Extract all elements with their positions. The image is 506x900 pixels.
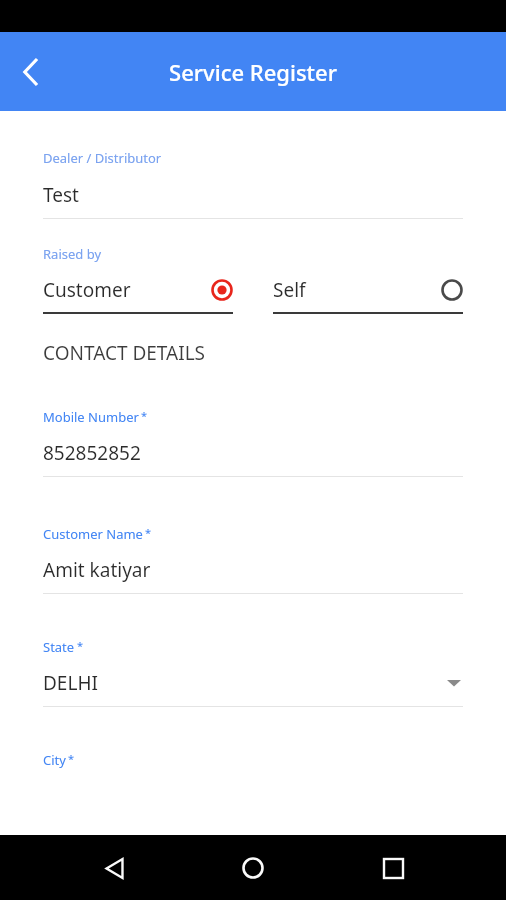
staticText: * — [77, 638, 84, 653]
button[interactable]: State — [43, 638, 463, 707]
staticText: Mobile Number — [43, 408, 139, 426]
staticText: Customer — [43, 277, 211, 303]
staticText: Raised by — [43, 245, 102, 263]
button[interactable]: Self — [273, 277, 463, 314]
button[interactable]: Recent apps — [367, 842, 419, 894]
staticText: * — [145, 525, 152, 540]
staticText: CONTACT DETAILS — [43, 340, 206, 366]
staticText: Amit katiyar — [43, 557, 463, 583]
staticText: * — [141, 408, 148, 423]
button[interactable]: Customer Name — [43, 525, 463, 594]
staticText: Service Register — [169, 57, 337, 87]
staticText: Self — [273, 277, 441, 303]
button[interactable]: Home — [227, 842, 279, 894]
button[interactable]: Back — [88, 842, 140, 894]
staticText: DELHI — [43, 670, 447, 696]
staticText: * — [68, 751, 75, 766]
button[interactable]: Dealer / Distributor — [43, 149, 463, 219]
staticText: Dealer / Distributor — [43, 149, 162, 167]
staticText: State — [43, 638, 75, 656]
staticText: Customer Name — [43, 525, 143, 543]
staticText: City — [43, 751, 66, 769]
staticText: 852852852 — [43, 440, 463, 466]
button[interactable]: Customer — [43, 277, 233, 314]
button[interactable]: Back — [8, 48, 56, 96]
button[interactable]: Mobile Number — [43, 408, 463, 477]
staticText: Test — [43, 182, 463, 208]
